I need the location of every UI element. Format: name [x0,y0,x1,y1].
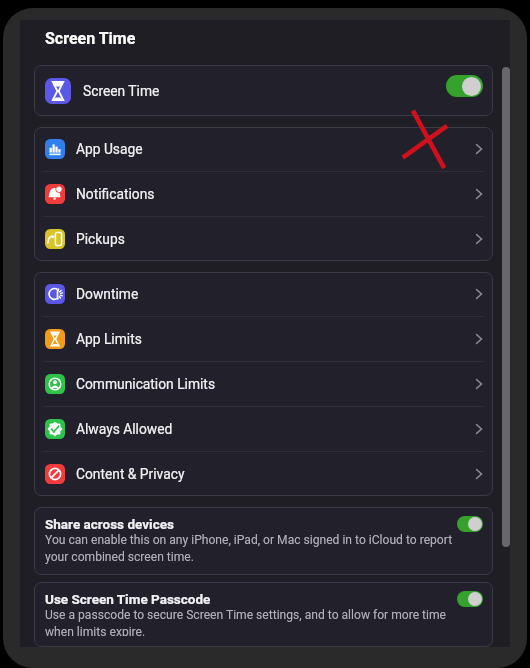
staticText: Share across devices [45,516,174,532]
button[interactable]: Screen Time [34,65,493,116]
button[interactable]: Pickups [34,217,493,261]
button[interactable]: toggle, on [457,591,483,607]
staticText: Downtime [76,286,139,302]
staticText: You can enable this on any iPhone, iPad,… [45,533,455,564]
button[interactable]: Use Screen Time Passcode [34,582,493,647]
staticText: App Limits [76,331,142,347]
staticText: Notifications [76,186,155,202]
staticText: Always Allowed [76,421,173,437]
staticText: App Usage [76,141,143,157]
staticText: Content & Privacy [76,466,185,482]
button[interactable]: Always Allowed [34,407,493,451]
button[interactable]: Content & Privacy [34,452,493,496]
button[interactable]: toggle, on [457,516,483,532]
button[interactable]: App Usage [34,127,493,171]
staticText: Communication Limits [76,376,216,392]
staticText: Pickups [76,231,125,247]
button[interactable]: Notifications [34,172,493,216]
button[interactable]: App Limits [34,317,493,361]
staticText: Use Screen Time Passcode [45,591,211,607]
staticText: Screen Time [45,29,136,48]
staticText: Screen Time [83,83,160,99]
button[interactable]: Share across devices [34,507,493,575]
staticText: Use a passcode to secure Screen Time set… [45,608,455,636]
button[interactable]: Downtime [34,272,493,316]
button[interactable]: Screen Time toggle, on [446,75,483,97]
button[interactable]: Communication Limits [34,362,493,406]
